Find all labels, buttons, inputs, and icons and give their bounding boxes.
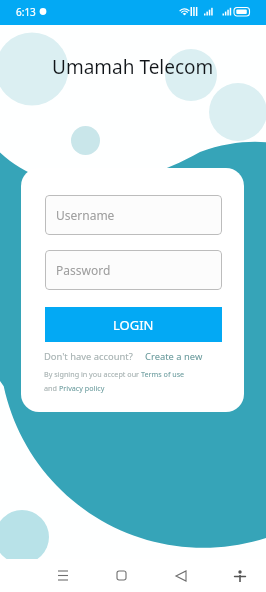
staticText: Terms of use [141,369,185,379]
staticText: Umamah Telecom [52,54,214,80]
button[interactable]: LOGIN [45,307,222,342]
staticText: Username [56,207,115,223]
staticText: Privacy policy [59,383,105,393]
button[interactable]: Home [105,559,138,592]
button[interactable]: Privacy policy [59,383,105,393]
button[interactable]: Recent apps [46,559,79,592]
staticText: By signing in you accept our [44,369,141,379]
staticText: 6:13 [16,5,36,19]
staticText: Create a new [145,350,203,363]
button[interactable]: Accessibility [223,559,256,592]
button[interactable]: Password [45,250,222,290]
button[interactable]: Back [164,559,197,592]
button[interactable]: Create a new [145,350,203,363]
staticText: Don't have account? [44,350,133,363]
staticText: Password [56,262,111,278]
button[interactable]: Terms of use [141,369,185,379]
staticText: LOGIN [113,316,154,334]
staticText: and [44,383,59,393]
button[interactable]: Username [45,195,222,235]
